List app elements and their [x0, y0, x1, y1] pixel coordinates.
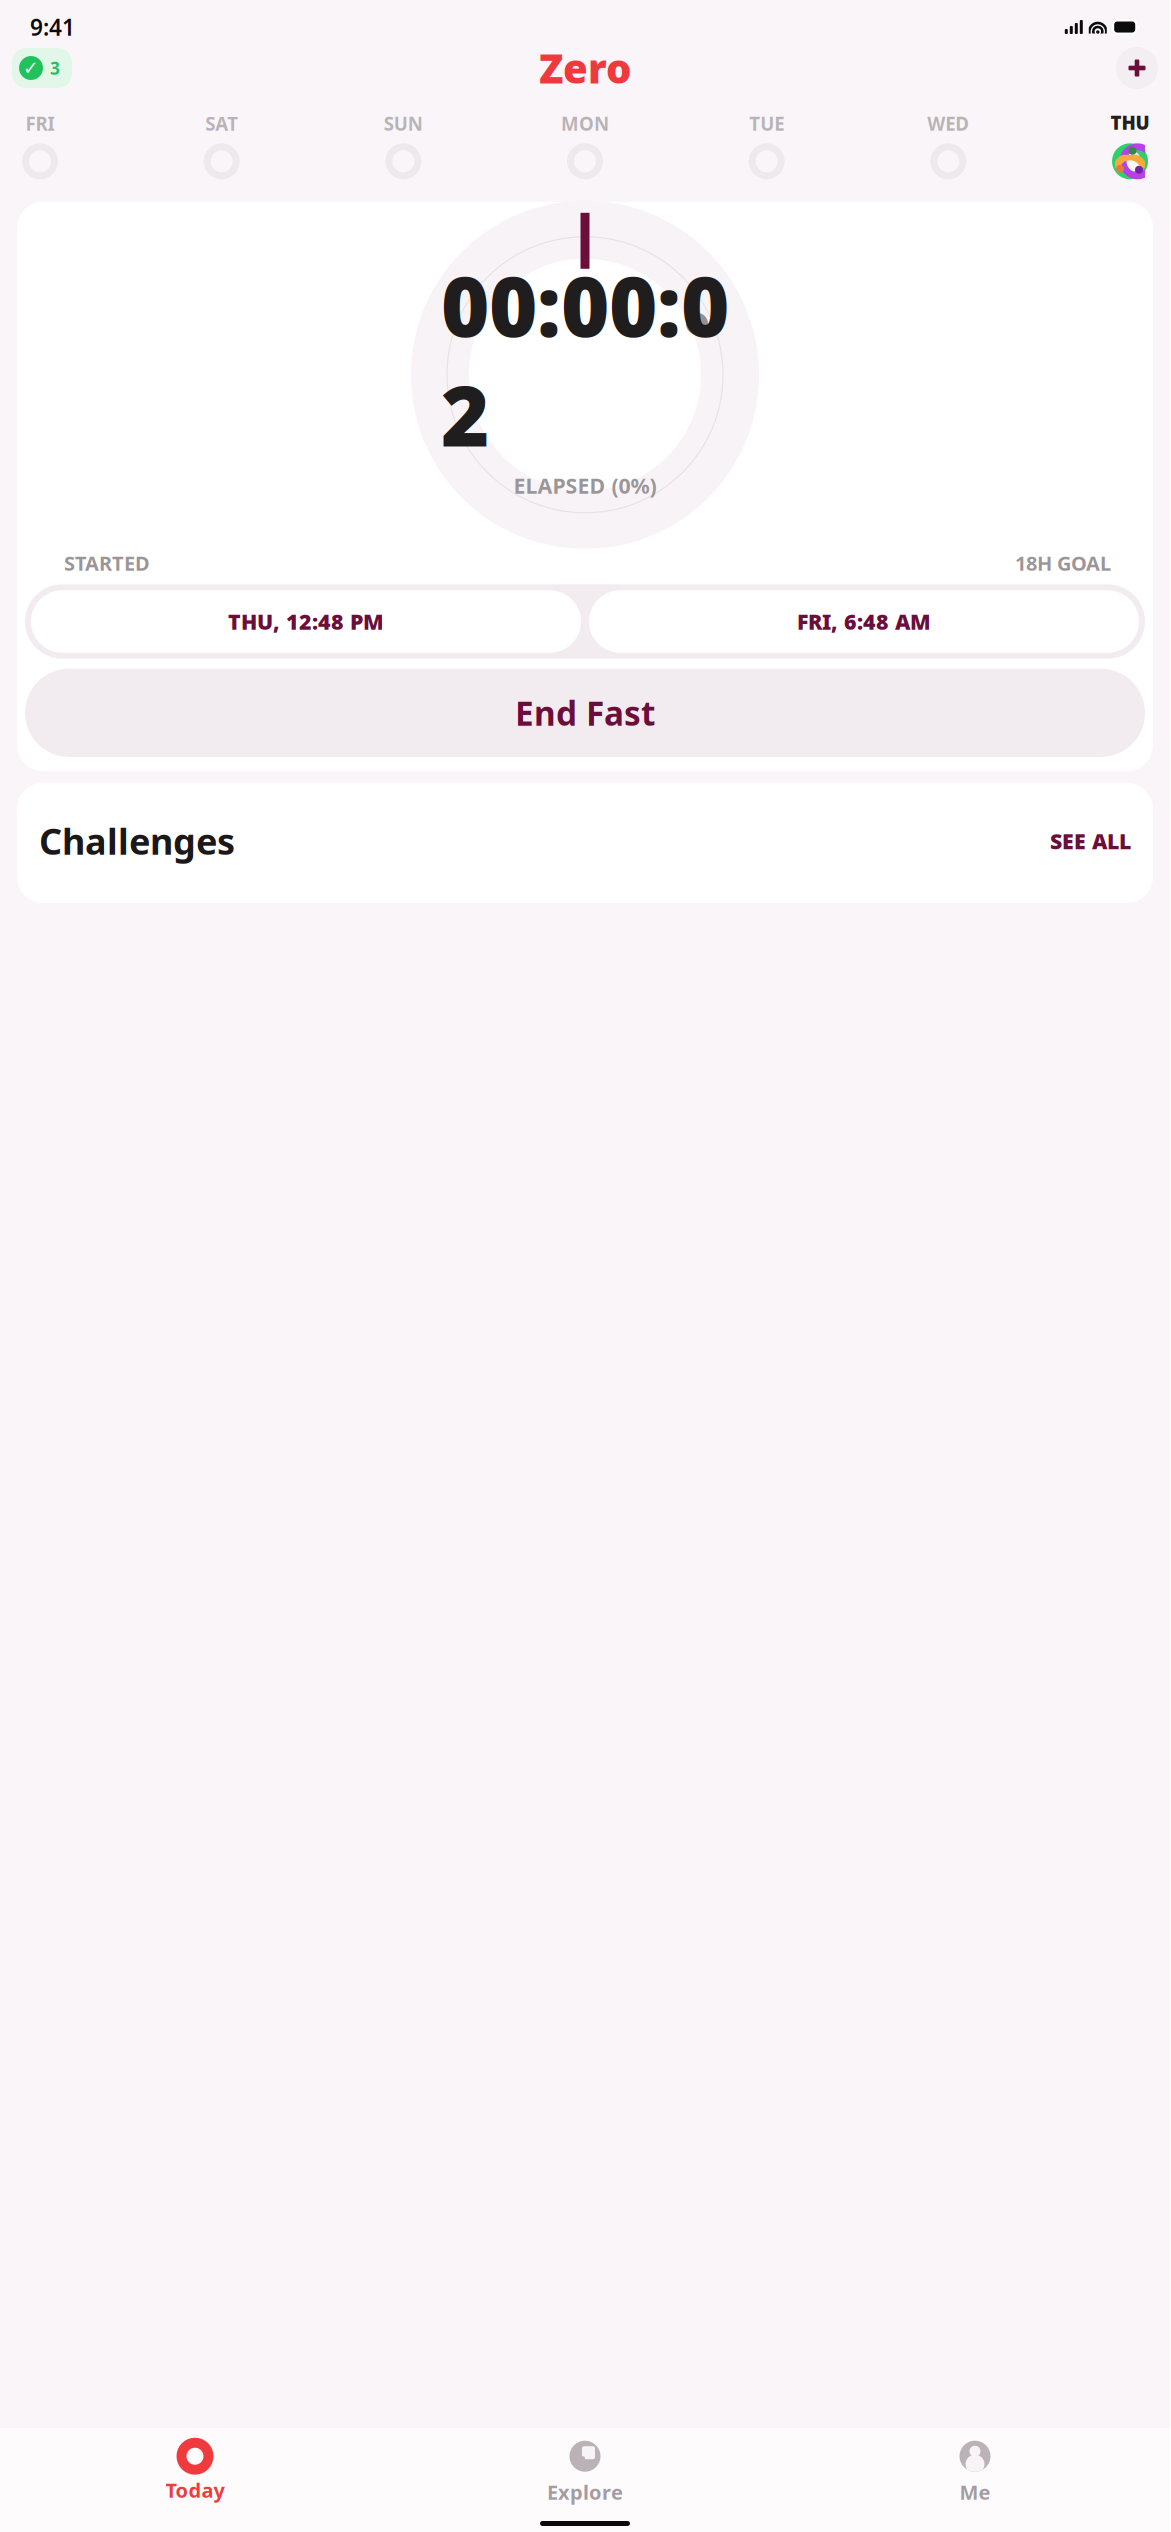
staticText: 9:41	[30, 12, 75, 42]
staticText: 3	[50, 56, 60, 79]
button[interactable]: SUN	[377, 111, 429, 176]
staticText: Zero	[539, 41, 631, 94]
button[interactable]: End Fast	[25, 669, 1145, 757]
button[interactable]: Explore	[390, 2441, 780, 2505]
staticText: 00:00:02	[441, 250, 729, 469]
staticText: Explore	[547, 2479, 623, 2505]
button[interactable]: FRI	[14, 111, 66, 176]
staticText: End Fast	[515, 691, 655, 735]
button[interactable]: THU, 12:48 PM	[31, 590, 581, 653]
button[interactable]: Today	[0, 2443, 390, 2503]
button[interactable]: ✓	[12, 48, 72, 88]
button[interactable]: TUE	[741, 111, 793, 176]
button[interactable]: SAT	[196, 111, 248, 176]
button[interactable]: Me	[780, 2441, 1170, 2505]
staticText: SAT	[205, 111, 238, 136]
staticText: WED	[927, 111, 969, 136]
staticText: TUE	[749, 111, 784, 136]
staticText: STARTED	[64, 550, 150, 576]
staticText: MON	[561, 111, 609, 136]
staticText: FRI, 6:48 AM	[797, 607, 931, 636]
staticText: ELAPSED (0%)	[513, 471, 656, 500]
button[interactable]: MON	[559, 111, 611, 176]
staticText: Me	[959, 2479, 990, 2505]
button[interactable]: SEE ALL	[1050, 827, 1131, 855]
staticText: Today	[165, 2477, 224, 2503]
staticText: SUN	[384, 111, 423, 136]
button[interactable]: FRI, 6:48 AM	[589, 590, 1139, 653]
staticText: ✓	[23, 57, 39, 79]
staticText: Challenges	[39, 817, 235, 865]
staticText: THU, 12:48 PM	[228, 607, 384, 636]
button[interactable]: WED	[922, 111, 974, 176]
staticText: FRI	[25, 111, 54, 136]
button[interactable]: THU	[1104, 110, 1156, 177]
staticText: SEE ALL	[1050, 827, 1131, 855]
staticText: 18H GOAL	[1015, 550, 1111, 576]
button[interactable]: Add	[1116, 47, 1158, 89]
staticText: THU	[1110, 110, 1149, 135]
